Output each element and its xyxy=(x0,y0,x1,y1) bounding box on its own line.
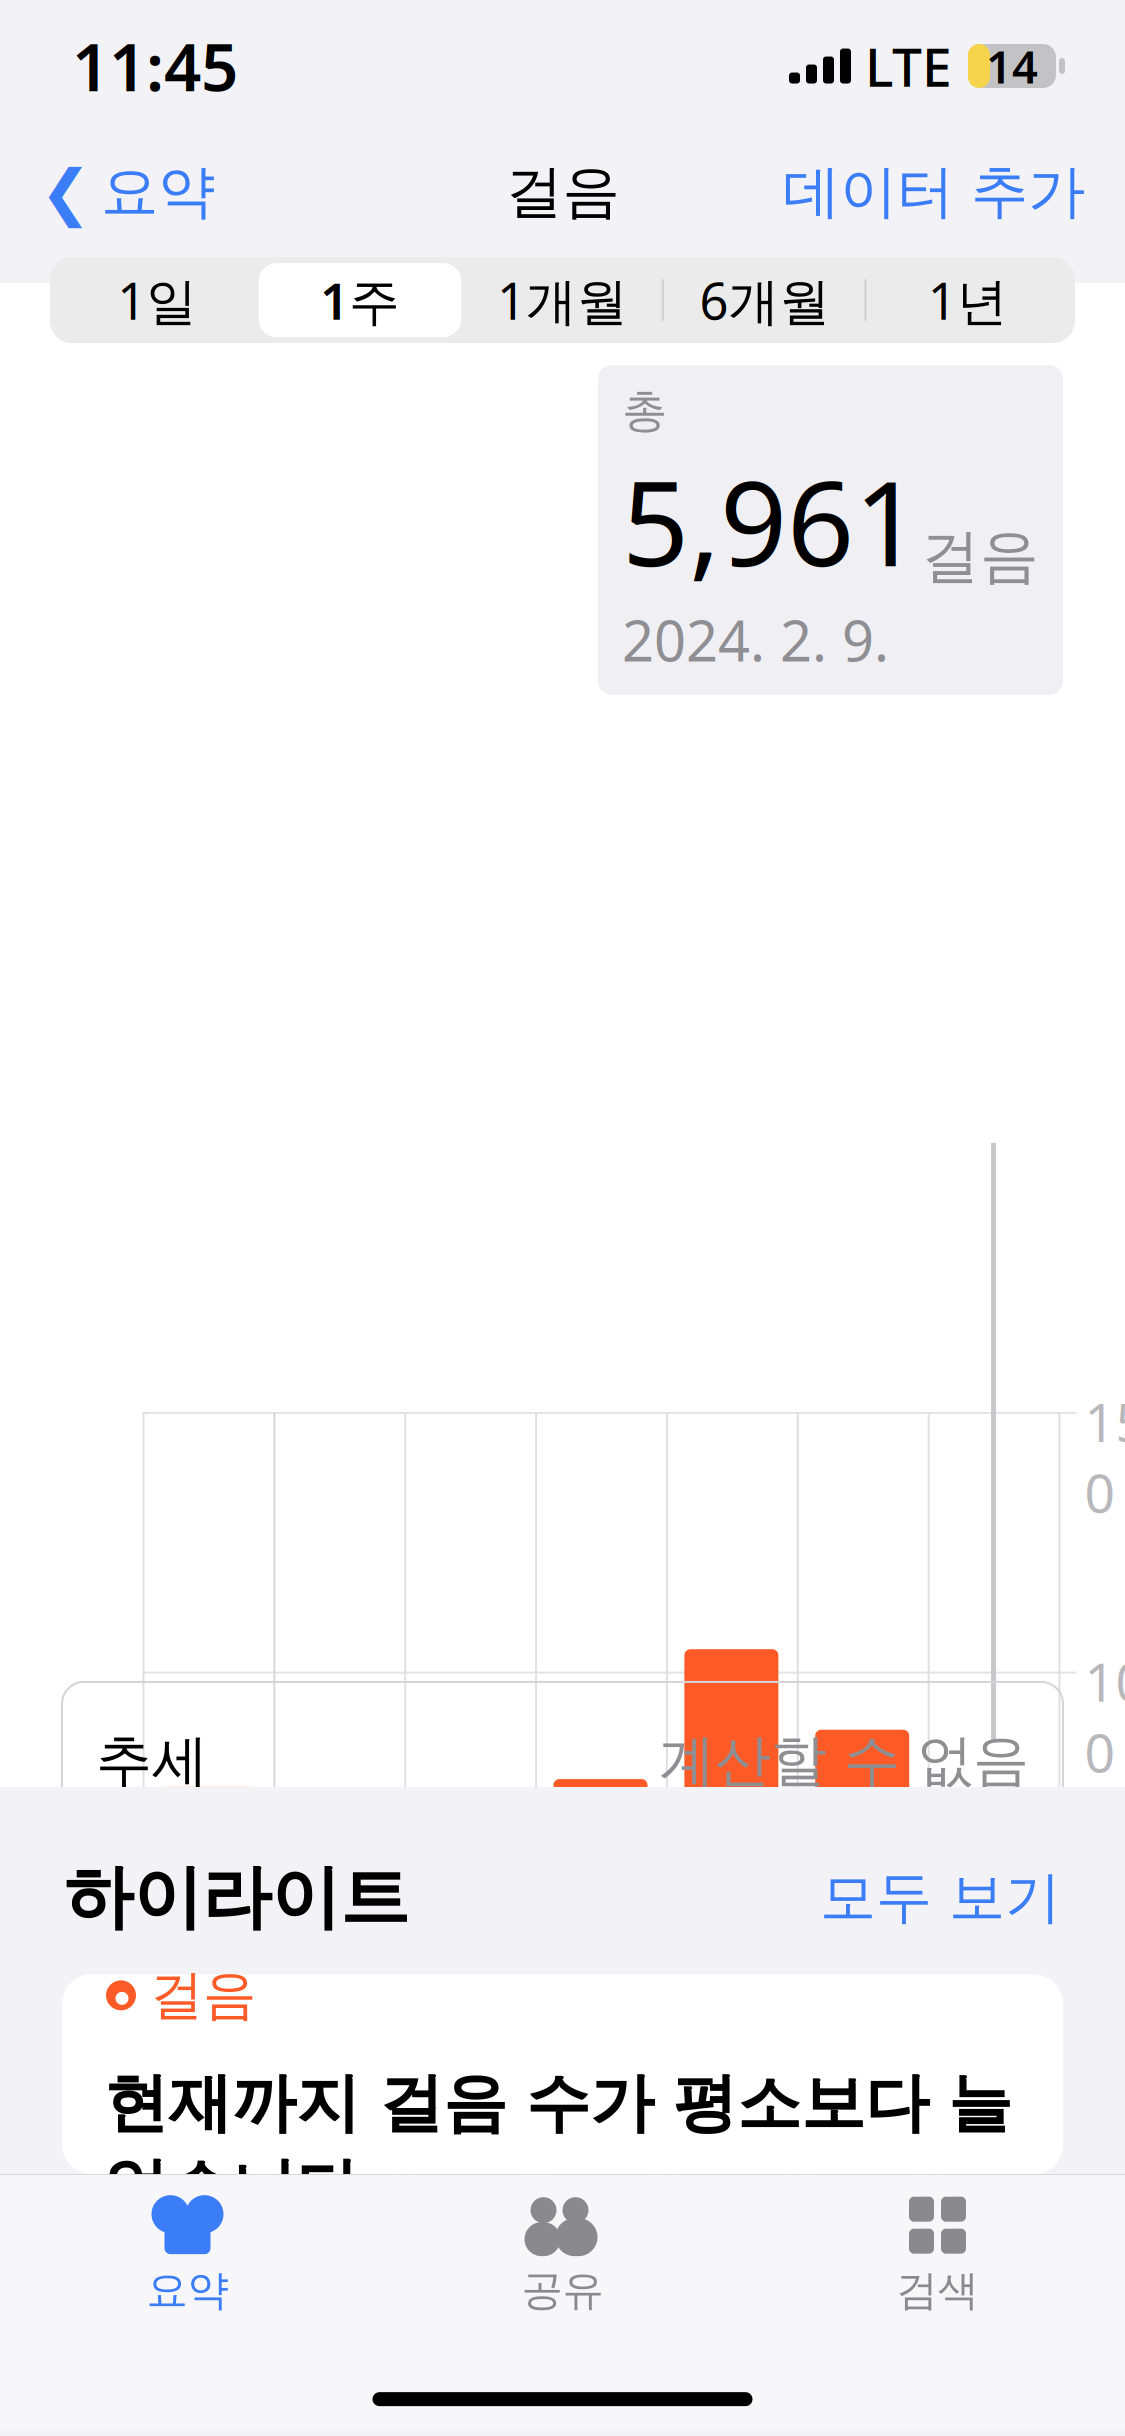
staticText: 화 xyxy=(545,2212,598,2277)
staticText: 15,000 xyxy=(1084,1386,1125,1527)
staticText: 계산할 수 없음 xyxy=(659,1726,1029,1795)
button[interactable]: 데이터 추가 xyxy=(757,143,1111,241)
staticText: 모두 보기 xyxy=(820,1863,1061,1932)
staticText: 총 xyxy=(622,383,667,439)
button[interactable]: 추세 xyxy=(62,1682,1063,1840)
button[interactable]: 1년 xyxy=(866,263,1069,337)
staticText: 14 xyxy=(986,36,1038,96)
staticText: 걸음 xyxy=(150,1963,256,2028)
staticText: 1년 xyxy=(928,266,1008,334)
staticText: 추세 xyxy=(96,1726,208,1795)
staticText: 공유 xyxy=(521,2265,603,2316)
button[interactable]: 1주 xyxy=(259,263,461,337)
button[interactable]: 검색 xyxy=(750,2175,1125,2326)
button[interactable]: 6개월 xyxy=(664,263,866,337)
staticText: 5,961 xyxy=(622,443,921,599)
button[interactable]: 요약 xyxy=(0,2175,375,2326)
staticText: 데이터 추가 xyxy=(783,157,1085,227)
staticText: 0 xyxy=(1084,2165,1115,2236)
staticText: 토 xyxy=(153,2212,206,2277)
button[interactable]: 1일 xyxy=(56,263,259,337)
button[interactable]: 모두 보기 xyxy=(800,1855,1061,1940)
staticText: 1개월 xyxy=(497,266,628,334)
staticText: 요약 xyxy=(101,157,215,227)
button[interactable]: 1개월 xyxy=(461,263,664,337)
staticText: 검색 xyxy=(896,2265,978,2316)
staticText: 걸음 xyxy=(505,157,619,227)
button[interactable]: ❮ xyxy=(14,143,241,241)
staticText: 10,000 xyxy=(1084,1646,1125,1787)
button[interactable]: 공유 xyxy=(375,2175,750,2326)
staticText: 요약 xyxy=(146,2265,228,2316)
staticText: LTE xyxy=(865,31,952,101)
button[interactable]: 걸음 xyxy=(62,1974,1063,2174)
staticText: 6개월 xyxy=(700,266,831,334)
staticText: 걸음 xyxy=(921,520,1039,593)
staticText: 1일 xyxy=(117,266,197,334)
staticText: 1주 xyxy=(320,266,400,334)
staticText: ❮ xyxy=(40,157,91,227)
staticText: 2024. 2. 9. xyxy=(622,603,889,677)
staticText: 11:45 xyxy=(72,23,238,109)
staticText: 금 xyxy=(938,2212,991,2277)
staticText: 현재까지 걸음 수가 평소보다 늘었습니다. xyxy=(104,2064,1012,2228)
staticText: 하이라이트 xyxy=(64,1855,409,1940)
